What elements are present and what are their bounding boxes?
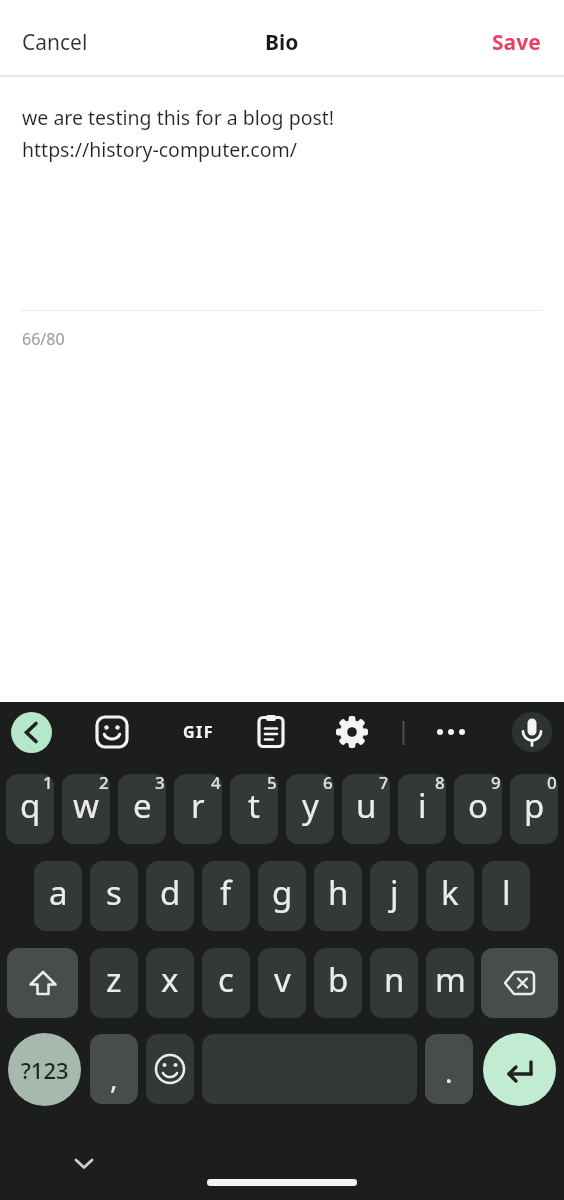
- button[interactable]: b: [314, 948, 362, 1018]
- button[interactable]: d: [146, 861, 194, 931]
- button[interactable]: w: [62, 774, 110, 844]
- staticText: 7: [379, 774, 389, 794]
- button[interactable]: e: [118, 774, 166, 844]
- button[interactable]: x: [146, 948, 194, 1018]
- button[interactable]: u: [342, 774, 390, 844]
- staticText: i: [418, 783, 427, 828]
- staticText: j: [390, 870, 399, 915]
- staticText: s: [106, 870, 122, 915]
- staticText: 3: [155, 774, 165, 794]
- staticText: c: [218, 957, 234, 1002]
- staticText: Cancel: [22, 28, 88, 57]
- button[interactable]: z: [90, 948, 138, 1018]
- button[interactable]: k: [426, 861, 474, 931]
- staticText: 66/80: [22, 328, 65, 350]
- button[interactable]: ?123: [8, 1033, 81, 1106]
- staticText: a: [49, 870, 68, 915]
- staticText: Bio: [265, 28, 299, 57]
- staticText: y: [302, 783, 319, 828]
- button[interactable]: y: [286, 774, 334, 844]
- staticText: u: [356, 783, 377, 828]
- button[interactable]: [330, 710, 374, 754]
- staticText: q: [20, 783, 41, 828]
- staticText: n: [384, 957, 405, 1002]
- staticText: g: [272, 870, 293, 915]
- button[interactable]: p: [510, 774, 558, 844]
- button[interactable]: a: [34, 861, 82, 931]
- staticText: l: [502, 870, 511, 915]
- staticText: 8: [435, 774, 445, 794]
- button[interactable]: t: [230, 774, 278, 844]
- staticText: m: [435, 957, 466, 1002]
- staticText: ?123: [21, 1055, 69, 1085]
- staticText: https://history-computer.com/: [22, 136, 298, 163]
- button[interactable]: q: [6, 774, 54, 844]
- staticText: GIF: [183, 721, 215, 743]
- staticText: Save: [492, 28, 541, 57]
- staticText: 2: [99, 774, 109, 794]
- staticText: .: [445, 1053, 453, 1091]
- button[interactable]: j: [370, 861, 418, 931]
- button[interactable]: GIF: [174, 718, 224, 746]
- button[interactable]: [249, 710, 293, 754]
- staticText: z: [106, 957, 122, 1002]
- staticText: b: [328, 957, 349, 1002]
- button[interactable]: m: [426, 948, 474, 1018]
- button[interactable]: [481, 948, 558, 1018]
- button[interactable]: g: [258, 861, 306, 931]
- staticText: 5: [267, 774, 277, 794]
- button[interactable]: [90, 710, 134, 754]
- button[interactable]: ,: [90, 1034, 138, 1104]
- staticText: 6: [323, 774, 333, 794]
- staticText: t: [248, 783, 260, 828]
- button[interactable]: i: [398, 774, 446, 844]
- button[interactable]: f: [202, 861, 250, 931]
- button[interactable]: Cancel: [22, 28, 88, 57]
- button[interactable]: [66, 1150, 102, 1176]
- button[interactable]: [146, 1034, 194, 1104]
- button[interactable]: [511, 711, 553, 753]
- staticText: h: [328, 870, 349, 915]
- button[interactable]: [431, 718, 471, 746]
- staticText: k: [441, 870, 459, 915]
- staticText: d: [160, 870, 181, 915]
- staticText: v: [274, 957, 291, 1002]
- staticText: 9: [491, 774, 501, 794]
- button[interactable]: .: [425, 1034, 473, 1104]
- button[interactable]: r: [174, 774, 222, 844]
- button[interactable]: n: [370, 948, 418, 1018]
- button[interactable]: h: [314, 861, 362, 931]
- staticText: we are testing this for a blog post!: [22, 104, 335, 131]
- button[interactable]: s: [90, 861, 138, 931]
- staticText: o: [468, 783, 488, 828]
- staticText: x: [161, 957, 179, 1002]
- button[interactable]: v: [258, 948, 306, 1018]
- button[interactable]: Save: [492, 28, 541, 57]
- staticText: w: [73, 783, 99, 828]
- staticText: 4: [211, 774, 221, 794]
- button[interactable]: [483, 1033, 556, 1106]
- button[interactable]: o: [454, 774, 502, 844]
- staticText: 0: [547, 774, 557, 794]
- staticText: ,: [110, 1059, 118, 1097]
- staticText: p: [524, 783, 545, 828]
- staticText: f: [220, 870, 232, 915]
- staticText: r: [191, 783, 205, 828]
- staticText: e: [133, 783, 152, 828]
- button[interactable]: c: [202, 948, 250, 1018]
- button[interactable]: [7, 948, 78, 1018]
- button[interactable]: [11, 712, 52, 753]
- button[interactable]: l: [482, 861, 530, 931]
- staticText: 1: [43, 774, 53, 794]
